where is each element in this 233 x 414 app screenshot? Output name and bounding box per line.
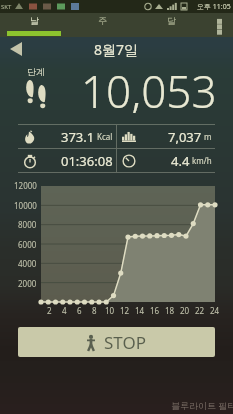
button[interactable]: More options — [206, 13, 233, 37]
button[interactable]: 날 — [0, 13, 68, 37]
staticText: 10 — [105, 305, 115, 316]
staticText: STOP — [104, 331, 147, 354]
staticText: 01:36:08 — [61, 152, 113, 170]
staticText: 14 — [135, 305, 145, 316]
staticText: 24 — [210, 305, 220, 316]
staticText: 18 — [165, 305, 175, 316]
staticText: Kcal — [97, 131, 113, 142]
button[interactable]: 달 — [137, 13, 206, 37]
staticText: 2 — [47, 305, 52, 316]
staticText: 2000 — [18, 278, 37, 289]
staticText: 373.1 — [61, 128, 95, 146]
staticText: 단계 — [27, 66, 45, 77]
staticText: 달 — [167, 15, 176, 26]
staticText: 22 — [195, 305, 205, 316]
button[interactable]: Previous day — [0, 37, 32, 61]
staticText: 10000 — [14, 200, 37, 211]
staticText: km/h — [192, 155, 212, 166]
staticText: 10,053 — [81, 61, 217, 113]
staticText: 4 — [62, 305, 67, 316]
staticText: 블루라이트 필터 — [171, 399, 233, 411]
staticText: 4000 — [18, 258, 37, 269]
staticText: 6 — [77, 305, 82, 316]
button[interactable]: 주 — [68, 13, 137, 37]
staticText: m — [204, 131, 212, 142]
staticText: 12 — [120, 305, 130, 316]
staticText: 8000 — [18, 219, 37, 230]
staticText: 7,037 — [168, 128, 202, 146]
staticText: 6000 — [18, 239, 37, 250]
staticText: 날 — [30, 15, 39, 26]
staticText: 12000 — [14, 180, 37, 191]
staticText: 8 — [92, 305, 97, 316]
staticText: SKT — [1, 3, 12, 11]
staticText: 주 — [98, 15, 107, 26]
staticText: 20 — [180, 305, 190, 316]
staticText: 8월7일 — [94, 40, 139, 59]
staticText: 4.4 — [171, 152, 190, 170]
staticText: 16 — [150, 305, 160, 316]
staticText: 오후 11:05 — [197, 2, 231, 12]
button[interactable]: STOP — [18, 327, 215, 357]
